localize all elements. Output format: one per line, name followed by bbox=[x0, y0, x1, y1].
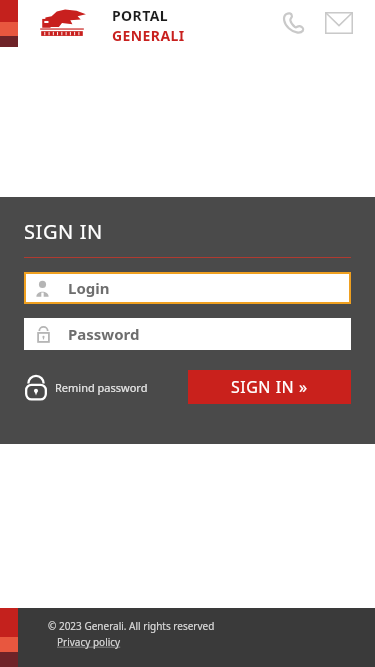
button[interactable]: Password bbox=[24, 318, 351, 350]
button[interactable]: SIGN IN » bbox=[188, 370, 351, 404]
staticText: Password bbox=[68, 324, 140, 344]
button[interactable]: Login bbox=[24, 272, 351, 304]
staticText: Remind password bbox=[55, 380, 148, 395]
staticText: SIGN IN » bbox=[231, 376, 308, 398]
staticText: GENERALI bbox=[112, 26, 185, 45]
staticText: Login bbox=[68, 278, 110, 298]
staticText: © 2023 Generali. All rights reserved bbox=[48, 619, 215, 633]
button[interactable]: Remind password bbox=[24, 372, 148, 403]
button[interactable]: Privacy policy bbox=[57, 635, 121, 649]
button[interactable]: Call us bbox=[281, 10, 307, 36]
button[interactable]: Email us bbox=[325, 12, 353, 34]
button[interactable]: Generali logo bbox=[36, 6, 88, 40]
staticText: SIGN IN bbox=[24, 218, 103, 245]
staticText: PORTAL bbox=[112, 6, 168, 25]
